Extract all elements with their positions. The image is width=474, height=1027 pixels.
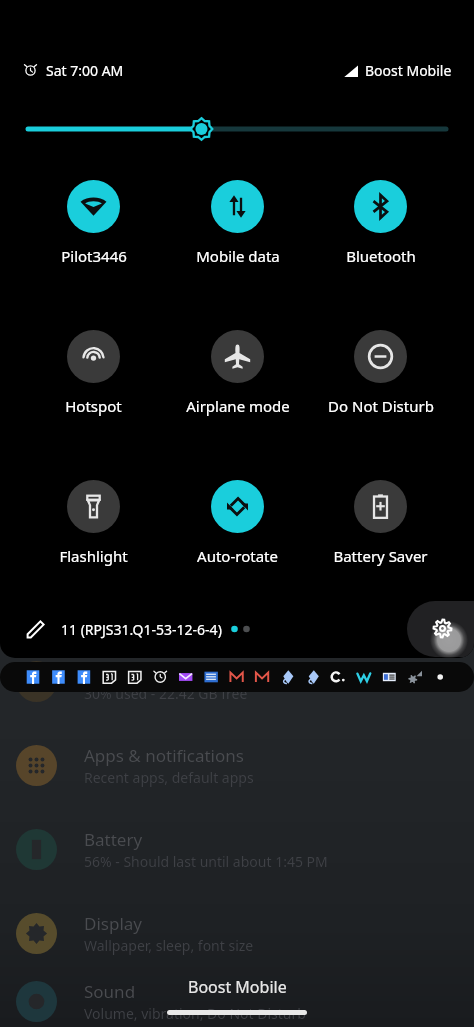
button[interactable]: Battery Saver bbox=[309, 460, 452, 566]
staticText: Sat 7:00 AM bbox=[46, 61, 124, 80]
staticText: Wallpaper, sleep, font size bbox=[84, 936, 254, 955]
button[interactable]: Bluetooth bbox=[309, 160, 452, 266]
staticText: Mobile data bbox=[196, 246, 280, 266]
button[interactable]: Edit bbox=[23, 616, 49, 642]
staticText: Sound bbox=[84, 980, 136, 1003]
button[interactable]: Mobile data bbox=[166, 160, 309, 266]
button[interactable]: Battery bbox=[0, 807, 474, 891]
staticText: Recent apps, default apps bbox=[84, 768, 254, 787]
staticText: Battery Saver bbox=[333, 546, 428, 566]
staticText: Bluetooth bbox=[346, 246, 416, 266]
staticText: 11 (RPJS31.Q1-53-12-6-4) bbox=[61, 620, 222, 639]
button[interactable]: Sound bbox=[0, 975, 474, 1027]
staticText: Airplane mode bbox=[186, 396, 290, 416]
button[interactable]: Apps & notifications bbox=[0, 723, 474, 807]
button[interactable]: Auto-rotate bbox=[166, 460, 309, 566]
button[interactable]: Settings bbox=[407, 601, 474, 657]
staticText: Apps & notifications bbox=[84, 744, 244, 767]
staticText: Hotspot bbox=[65, 396, 122, 416]
staticText: 30% used - 22.42 GB free bbox=[84, 684, 248, 703]
button[interactable]: Display bbox=[0, 891, 474, 975]
staticText: Pilot3446 bbox=[61, 246, 127, 266]
staticText: Storage bbox=[84, 660, 147, 683]
staticText: 56% - Should last until about 1:45 PM bbox=[84, 852, 328, 871]
button[interactable]: Hotspot bbox=[22, 310, 165, 416]
button[interactable]: Do Not Disturb bbox=[309, 310, 452, 416]
staticText: Display bbox=[84, 912, 142, 935]
staticText: Do Not Disturb bbox=[328, 396, 434, 416]
button[interactable]: Storage bbox=[0, 639, 474, 723]
button[interactable]: Flashlight bbox=[22, 460, 165, 566]
staticText: Auto-rotate bbox=[197, 546, 278, 566]
staticText: Volume, vibration, Do Not Disturb bbox=[84, 1004, 306, 1023]
staticText: Battery bbox=[84, 828, 143, 851]
staticText: Boost Mobile bbox=[188, 976, 287, 998]
button[interactable]: Airplane mode bbox=[166, 310, 309, 416]
staticText: Boost Mobile bbox=[365, 61, 452, 80]
button[interactable]: Pilot3446 bbox=[22, 160, 165, 266]
staticText: Flashlight bbox=[59, 546, 128, 566]
